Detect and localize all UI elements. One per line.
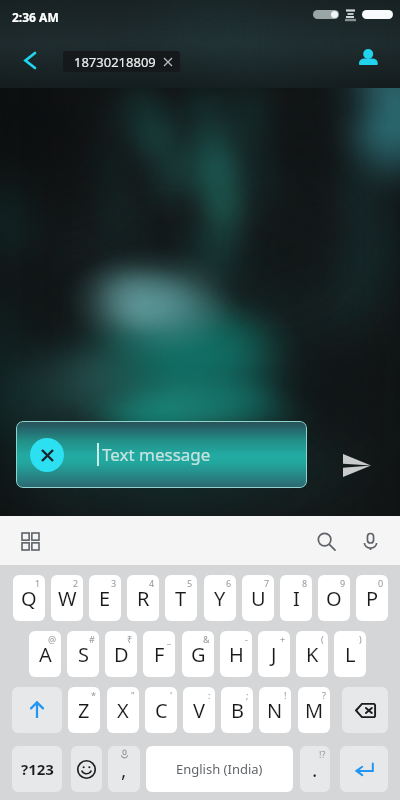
button[interactable]: ?123 [12, 746, 62, 792]
staticText: 6 [226, 577, 232, 589]
staticText: English (India) [176, 760, 263, 778]
button[interactable]: G [182, 631, 214, 677]
staticText: O [326, 585, 342, 612]
button[interactable]: , [108, 746, 140, 792]
button[interactable]: English (India) [146, 746, 293, 792]
button[interactable]: P [356, 575, 388, 621]
button[interactable]: W [51, 575, 83, 621]
button[interactable]: 18730218809 [63, 51, 180, 72]
staticText: X [117, 697, 129, 724]
staticText: G [191, 641, 206, 668]
staticText: Y [214, 585, 226, 612]
staticText: K [306, 641, 319, 668]
staticText: 3 [111, 577, 117, 589]
staticText: W [58, 585, 77, 612]
button[interactable]: F [143, 631, 175, 677]
staticText: M [305, 697, 324, 724]
button[interactable]: A [29, 631, 61, 677]
staticText: Text message [102, 443, 211, 466]
button[interactable]: . [300, 746, 330, 792]
staticText: 2 [73, 577, 79, 589]
staticText: * [91, 689, 96, 701]
button[interactable]: S [67, 631, 99, 677]
staticText: 1 [35, 577, 41, 589]
staticText: 0 [378, 577, 384, 589]
button[interactable]: Send [333, 443, 381, 488]
staticText: 4 [149, 577, 155, 589]
button[interactable]: E [89, 575, 121, 621]
staticText: 8 [302, 577, 308, 589]
staticText: - [245, 633, 248, 645]
staticText: 5 [187, 577, 193, 589]
button[interactable]: J [258, 631, 290, 677]
button[interactable]: Voice input [354, 525, 386, 557]
button[interactable]: N [259, 687, 291, 733]
staticText: !? [319, 748, 326, 760]
staticText: ?123 [21, 759, 54, 779]
staticText: , [121, 756, 127, 783]
button[interactable]: V [183, 687, 215, 733]
staticText: 7 [264, 577, 270, 589]
button[interactable]: Enter [340, 746, 388, 792]
staticText: @ [48, 633, 57, 645]
staticText: N [267, 697, 283, 724]
button[interactable]: U [242, 575, 274, 621]
button[interactable]: C [145, 687, 177, 733]
button[interactable]: Emoji [71, 746, 102, 792]
staticText: T [175, 585, 187, 612]
button[interactable]: Shift [12, 687, 62, 733]
button[interactable]: Apps [14, 525, 46, 557]
button[interactable]: H [220, 631, 252, 677]
staticText: L [345, 641, 356, 668]
staticText: S [78, 641, 89, 668]
button[interactable]: K [296, 631, 328, 677]
button[interactable]: R [127, 575, 159, 621]
staticText: B [231, 697, 244, 724]
staticText: V [193, 697, 205, 724]
staticText: H [229, 641, 244, 668]
button[interactable]: Y [204, 575, 236, 621]
button[interactable]: L [334, 631, 366, 677]
button[interactable]: O [318, 575, 350, 621]
staticText: C [155, 697, 168, 724]
staticText: " [131, 689, 135, 701]
staticText: ₹ [127, 633, 133, 645]
staticText: D [114, 641, 129, 668]
button[interactable]: Back [8, 38, 52, 82]
button[interactable]: Text message [16, 421, 307, 488]
staticText: ; [246, 689, 249, 701]
staticText: ) [359, 633, 362, 645]
staticText: J [271, 641, 277, 668]
staticText: R [137, 585, 150, 612]
staticText: 18730218809 [74, 53, 156, 71]
button[interactable]: X [107, 687, 139, 733]
button[interactable]: Z [68, 687, 100, 733]
staticText: ' [170, 689, 173, 701]
staticText: ? [322, 689, 326, 701]
staticText: F [154, 641, 165, 668]
staticText: 2:36 AM [12, 9, 59, 25]
staticText: + [280, 633, 286, 645]
button[interactable]: T [165, 575, 197, 621]
staticText: I [293, 585, 300, 612]
button[interactable]: Q [13, 575, 45, 621]
staticText: Z [78, 697, 90, 724]
button[interactable]: Backspace [342, 687, 388, 733]
button[interactable]: Contact info [347, 35, 391, 79]
staticText: . [312, 756, 318, 783]
staticText: A [39, 641, 52, 668]
staticText: ( [321, 633, 324, 645]
button[interactable]: M [298, 687, 330, 733]
staticText: U [251, 585, 266, 612]
button[interactable]: B [221, 687, 253, 733]
staticText: _ [167, 633, 171, 645]
button[interactable]: I [280, 575, 312, 621]
button[interactable]: D [105, 631, 137, 677]
staticText: 9 [340, 577, 346, 589]
button[interactable]: Search [310, 525, 342, 557]
staticText: E [99, 585, 111, 612]
staticText: & [203, 633, 210, 645]
staticText: Q [21, 585, 37, 612]
staticText: P [366, 585, 379, 612]
staticText: # [89, 633, 95, 645]
